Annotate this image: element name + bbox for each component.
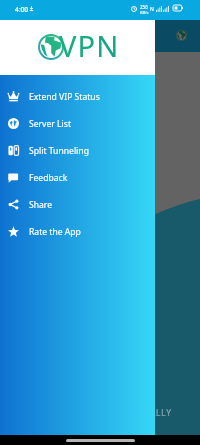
staticText: KB/s [140,10,149,15]
staticText: Extend VIP Status [29,91,100,103]
button[interactable]: Rate the App [0,218,155,245]
staticText: Split Tunneling [29,145,89,157]
button[interactable]: Extend VIP Status [0,83,155,110]
staticText: Share [29,199,53,211]
button[interactable]: Split Tunneling [0,137,155,164]
staticText: 4:00 [15,5,28,14]
button[interactable]: Share [0,191,155,218]
button[interactable]: Server List [0,110,155,137]
button[interactable]: Select server [172,26,191,45]
staticText: CONNECT AUTOMATICALLY [46,406,172,418]
staticText: N [150,6,154,13]
staticText: Rate the App [29,226,81,238]
staticText: VPN [59,26,120,65]
staticText: Feedback [29,172,68,184]
staticText: 256 [140,4,148,10]
button[interactable]: CONNECT AUTOMATICALLY [0,403,200,421]
staticText: Server List [29,118,72,130]
button[interactable]: Feedback [0,164,155,191]
